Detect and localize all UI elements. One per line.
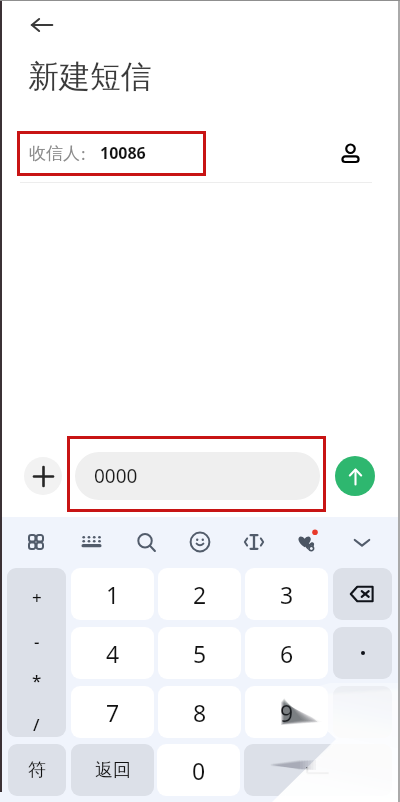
button[interactable]: Enter bbox=[333, 686, 392, 738]
staticText: 10086 bbox=[100, 142, 146, 164]
staticText: 新建短信 bbox=[28, 57, 152, 96]
button[interactable]: Hide keyboard bbox=[341, 521, 383, 563]
staticText: 7 bbox=[106, 697, 120, 728]
button[interactable]: Send bbox=[335, 456, 375, 496]
button[interactable]: Period bbox=[333, 627, 392, 679]
staticText: 9 bbox=[280, 697, 294, 728]
button[interactable]: 6 bbox=[245, 627, 328, 679]
staticText: 4 bbox=[106, 638, 120, 669]
button[interactable]: Space bbox=[244, 744, 392, 796]
button[interactable]: 0000 bbox=[75, 452, 320, 500]
button[interactable]: Stickers bbox=[287, 521, 329, 563]
button[interactable]: Text editing bbox=[233, 521, 275, 563]
button[interactable]: Emoji bbox=[179, 521, 221, 563]
button[interactable]: Add attachment bbox=[24, 457, 62, 495]
button[interactable]: Search bbox=[125, 521, 167, 563]
button[interactable]: Operators bbox=[7, 568, 66, 737]
button[interactable]: Backspace bbox=[333, 568, 392, 620]
staticText: 0000 bbox=[94, 463, 138, 489]
staticText: 3 bbox=[280, 579, 294, 610]
staticText: 符 bbox=[28, 759, 46, 782]
button[interactable]: 8 bbox=[158, 686, 241, 738]
staticText: 1 bbox=[106, 579, 120, 610]
button[interactable]: 9 bbox=[245, 686, 328, 738]
button[interactable]: 5 bbox=[158, 627, 241, 679]
button[interactable]: 3 bbox=[245, 568, 328, 620]
staticText: / bbox=[33, 713, 40, 736]
button[interactable]: Keyboard bbox=[70, 521, 112, 563]
staticText: 收信人 bbox=[29, 143, 80, 164]
staticText: 2 bbox=[193, 579, 207, 610]
button[interactable]: Apps bbox=[15, 521, 57, 563]
staticText: 5 bbox=[193, 638, 207, 669]
button[interactable]: Contacts bbox=[330, 134, 370, 174]
button[interactable]: 1 bbox=[71, 568, 154, 620]
staticText: 6 bbox=[280, 638, 294, 669]
staticText: + bbox=[32, 586, 42, 609]
staticText: 返回 bbox=[95, 759, 131, 782]
button[interactable]: 4 bbox=[71, 627, 154, 679]
staticText: 8 bbox=[193, 697, 207, 728]
button[interactable]: 符 bbox=[8, 744, 66, 796]
staticText: * bbox=[32, 669, 42, 692]
staticText: 0 bbox=[192, 755, 206, 786]
staticText: - bbox=[34, 630, 40, 653]
button[interactable]: 0 bbox=[157, 744, 240, 796]
button[interactable]: 返回 bbox=[71, 744, 154, 796]
button[interactable]: Back bbox=[22, 5, 62, 45]
button[interactable]: 7 bbox=[71, 686, 154, 738]
staticText: : bbox=[81, 142, 86, 165]
button[interactable]: 2 bbox=[158, 568, 241, 620]
